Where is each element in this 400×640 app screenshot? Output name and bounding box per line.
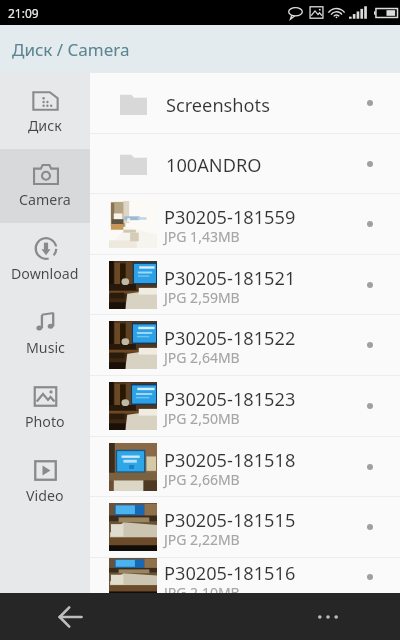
staticText: P30205-181515: [164, 508, 296, 533]
staticText: P30205-181518: [164, 448, 296, 473]
button[interactable]: P30205-181522: [90, 315, 400, 375]
button[interactable]: P30205-181516: [90, 558, 400, 596]
staticText: JPG 2,10MB: [164, 583, 240, 596]
staticText: Screenshots: [166, 93, 270, 118]
staticText: JPG 1,43MB: [164, 227, 240, 246]
staticText: Video: [26, 486, 64, 505]
button[interactable]: Screenshots: [90, 73, 400, 133]
staticText: P30205-181516: [164, 561, 296, 586]
button[interactable]: Photo: [0, 371, 90, 445]
button[interactable]: More options: [310, 599, 346, 635]
staticText: JPG 2,59MB: [164, 288, 240, 307]
staticText: P30205-181559: [164, 205, 296, 230]
button[interactable]: Video: [0, 445, 90, 519]
staticText: Диск / Camera: [12, 38, 130, 61]
staticText: P30205-181521: [164, 266, 296, 291]
button[interactable]: Back: [52, 598, 89, 635]
staticText: Download: [11, 264, 79, 283]
button[interactable]: P30205-181559: [90, 194, 400, 254]
button[interactable]: Диск: [0, 75, 90, 149]
staticText: Camera: [19, 190, 71, 209]
staticText: Music: [26, 338, 65, 357]
button[interactable]: P30205-181515: [90, 497, 400, 557]
button[interactable]: P30205-181518: [90, 437, 400, 496]
staticText: Photo: [25, 412, 65, 431]
staticText: 21:09: [8, 5, 39, 21]
staticText: Диск: [28, 116, 62, 135]
staticText: JPG 2,22MB: [164, 530, 240, 549]
button[interactable]: Music: [0, 297, 90, 371]
button[interactable]: P30205-181521: [90, 255, 400, 314]
staticText: JPG 2,66MB: [164, 470, 240, 489]
staticText: JPG 2,64MB: [164, 348, 240, 367]
staticText: JPG 2,50MB: [164, 409, 240, 428]
button[interactable]: Download: [0, 223, 90, 297]
staticText: P30205-181522: [164, 326, 296, 351]
staticText: 100ANDRO: [166, 153, 262, 178]
button[interactable]: Camera: [0, 149, 90, 223]
button[interactable]: P30205-181523: [90, 376, 400, 436]
button[interactable]: 100ANDRO: [90, 134, 400, 193]
staticText: P30205-181523: [164, 387, 296, 412]
